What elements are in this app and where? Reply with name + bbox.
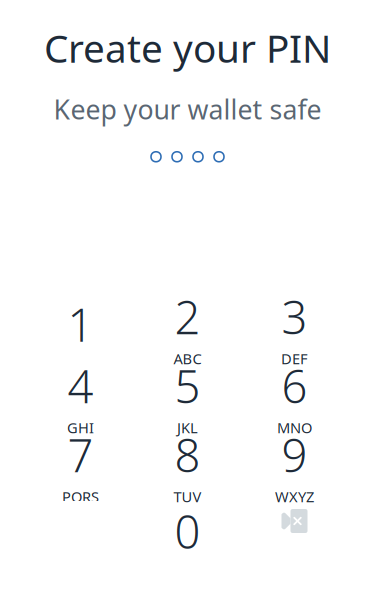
button[interactable]: 9 [241, 432, 348, 501]
staticText: JKL [177, 418, 198, 437]
staticText: 5 [174, 356, 200, 416]
staticText: GHI [67, 418, 94, 437]
staticText: PQRS [62, 487, 99, 506]
button[interactable]: 0 [134, 501, 241, 570]
staticText: TUV [173, 487, 201, 506]
staticText: 6 [281, 356, 307, 416]
button[interactable]: Delete [241, 501, 348, 570]
staticText: 4 [67, 356, 93, 416]
button[interactable]: 3 [241, 294, 348, 363]
button[interactable]: 4 [27, 363, 134, 432]
staticText: 7 [67, 425, 93, 485]
staticText: 3 [281, 287, 307, 347]
button[interactable]: 8 [134, 432, 241, 501]
staticText: Create your PIN [44, 22, 331, 73]
staticText: 1 [67, 294, 93, 354]
button[interactable]: 5 [134, 363, 241, 432]
staticText: 2 [174, 287, 200, 347]
staticText: 0 [174, 501, 200, 561]
staticText: 8 [174, 425, 200, 485]
staticText: ABC [173, 349, 201, 368]
staticText: MNO [277, 418, 312, 437]
button[interactable]: 6 [241, 363, 348, 432]
button[interactable]: 1 [27, 294, 134, 363]
button[interactable]: 2 [134, 294, 241, 363]
staticText: WXYZ [275, 487, 314, 506]
staticText: 9 [281, 425, 307, 485]
staticText: Keep your wallet safe [53, 91, 321, 127]
button[interactable]: 7 [27, 432, 134, 501]
staticText: DEF [281, 349, 308, 368]
